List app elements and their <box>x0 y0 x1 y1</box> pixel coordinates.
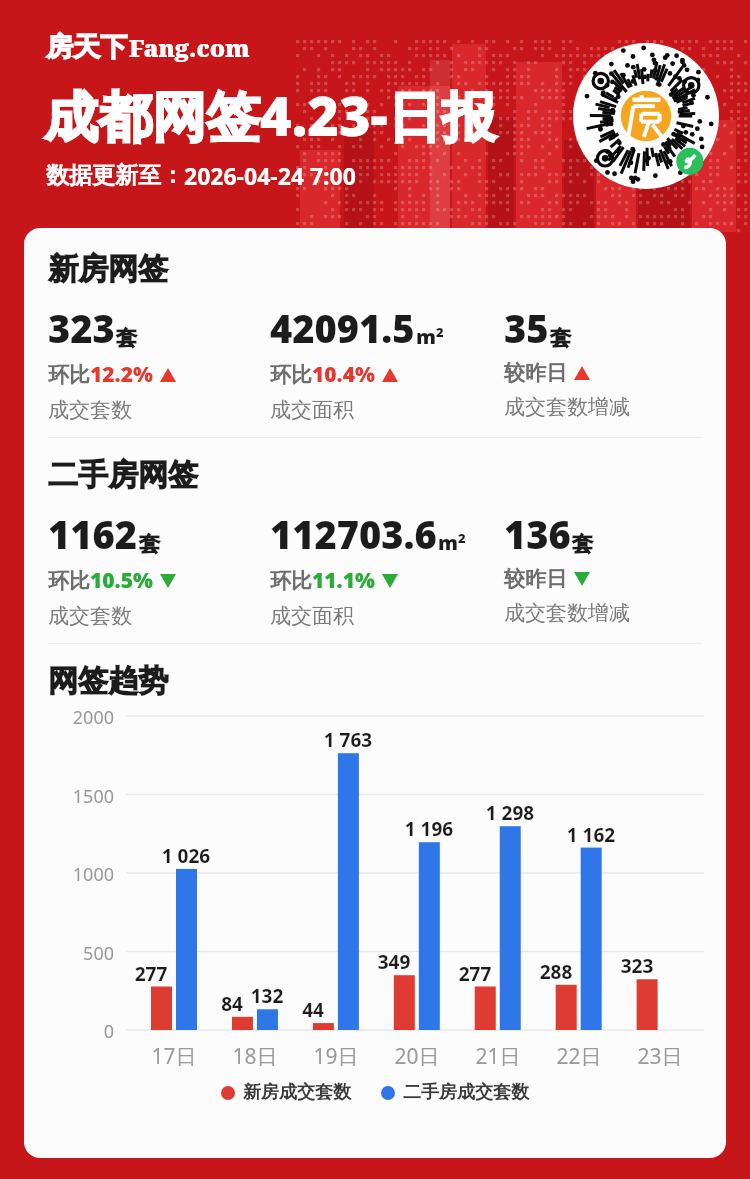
staticText: 环比 <box>48 568 90 594</box>
staticText: m <box>438 529 458 556</box>
button[interactable]: 小程序码 <box>573 43 719 189</box>
staticText: 277 <box>121 961 181 987</box>
staticText: 1500 <box>52 784 114 809</box>
staticText: 0 <box>52 1019 114 1044</box>
staticText: 2 <box>458 529 466 547</box>
staticText: 12.2% <box>90 360 153 389</box>
staticText: 环比 <box>270 362 312 388</box>
staticText: 二手房成交套数 <box>403 1081 529 1104</box>
staticText: 套 <box>139 531 160 557</box>
staticText: 21日 <box>463 1042 533 1071</box>
staticText: 成交面积 <box>270 397 354 423</box>
staticText: 成交套数增减 <box>504 394 630 420</box>
staticText: 132 <box>232 983 302 1009</box>
staticText: 新房网签 <box>48 250 168 288</box>
staticText: 349 <box>364 949 424 975</box>
staticText: 成交套数 <box>48 397 132 423</box>
staticText: 1162 <box>48 508 138 560</box>
staticText: 成交套数 <box>48 603 132 629</box>
staticText: 35 <box>504 302 549 354</box>
staticText: 17日 <box>139 1042 209 1071</box>
staticText: 成交套数增减 <box>504 600 630 626</box>
button[interactable]: 二手房成交套数 <box>381 1081 529 1104</box>
staticText: 20日 <box>382 1042 452 1071</box>
staticText: 323 <box>607 953 667 979</box>
staticText: 84 <box>202 991 262 1017</box>
staticText: 套 <box>550 325 571 351</box>
staticText: 1 162 <box>556 822 626 848</box>
staticText: 成交面积 <box>270 603 354 629</box>
staticText: 套 <box>572 531 593 557</box>
staticText: 19日 <box>301 1042 371 1071</box>
staticText: 10.4% <box>312 360 375 389</box>
staticText: 较昨日 <box>504 360 567 386</box>
staticText: m <box>416 323 436 350</box>
staticText: 2026-04-24 7:00 <box>184 160 356 191</box>
staticText: 房天下 <box>46 30 127 64</box>
staticText: 成都网签4.23-日报 <box>44 78 496 152</box>
staticText: 1 196 <box>394 816 464 842</box>
staticText: 2000 <box>52 705 114 730</box>
staticText: 较昨日 <box>504 566 567 592</box>
staticText: 套 <box>116 325 137 351</box>
staticText: 11.1% <box>312 566 375 595</box>
staticText: 环比 <box>270 568 312 594</box>
staticText: 网签趋势 <box>48 662 168 700</box>
staticText: 1000 <box>52 862 114 887</box>
staticText: 新房成交套数 <box>243 1081 351 1104</box>
staticText: 288 <box>526 959 586 985</box>
staticText: 数据更新至： <box>46 161 184 190</box>
staticText: 323 <box>48 302 115 354</box>
staticText: 500 <box>52 941 114 966</box>
staticText: 18日 <box>220 1042 290 1071</box>
staticText: 23日 <box>625 1042 695 1071</box>
staticText: 1 298 <box>475 800 545 826</box>
button[interactable]: 新房成交套数 <box>221 1081 351 1104</box>
staticText: 二手房网签 <box>48 456 198 494</box>
staticText: 1 026 <box>151 843 221 869</box>
staticText: 277 <box>445 961 505 987</box>
staticText: 10.5% <box>90 566 153 595</box>
staticText: 42091.5 <box>270 302 415 354</box>
staticText: 环比 <box>48 362 90 388</box>
staticText: 22日 <box>544 1042 614 1071</box>
staticText: Fang.com <box>129 31 250 64</box>
staticText: 1 763 <box>313 727 383 753</box>
staticText: 2 <box>436 323 444 341</box>
staticText: 136 <box>504 508 571 560</box>
staticText: 44 <box>283 997 343 1023</box>
staticText: 112703.6 <box>270 508 437 560</box>
